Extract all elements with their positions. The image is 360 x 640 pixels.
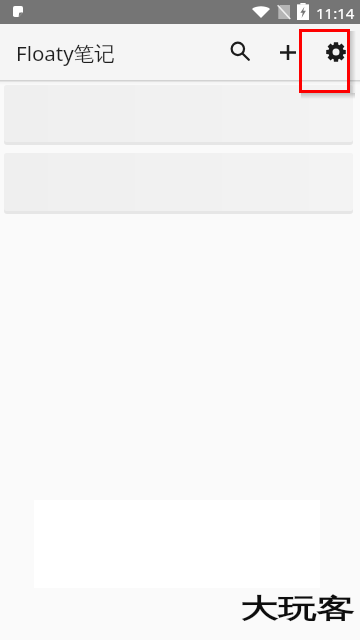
button[interactable] <box>4 85 353 142</box>
staticText: Floaty笔记 <box>16 39 115 67</box>
button[interactable]: Settings <box>312 24 360 80</box>
staticText: 11:14 <box>316 3 355 23</box>
button[interactable]: Search <box>215 24 263 80</box>
staticText: 大玩客 <box>240 592 354 625</box>
button[interactable]: Add note <box>264 24 312 80</box>
